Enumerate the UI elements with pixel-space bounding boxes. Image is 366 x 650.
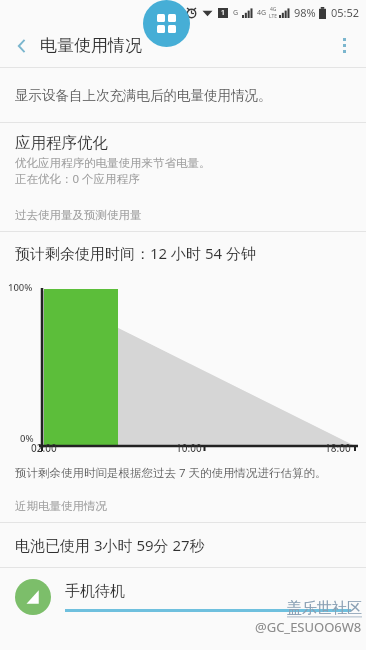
staticText: 电量使用情况 bbox=[40, 35, 142, 56]
staticText: 05:52 bbox=[331, 5, 360, 20]
staticText: 预计剩余使用时间是根据您过去 7 天的使用情况进行估算的。 bbox=[15, 465, 327, 481]
staticText: 1 bbox=[221, 8, 226, 18]
staticText: 应用程序优化 bbox=[15, 133, 108, 153]
staticText: 盖乐世社区 bbox=[287, 599, 362, 618]
button[interactable]: More options bbox=[322, 24, 366, 67]
staticText: 0% bbox=[20, 432, 34, 445]
staticText: LTE bbox=[269, 13, 278, 20]
staticText: 过去使用量及预测使用量 bbox=[15, 208, 142, 222]
staticText: 4G bbox=[270, 6, 277, 13]
button[interactable]: 应用程序优化 bbox=[0, 123, 366, 199]
staticText: 显示设备自上次充满电后的电量使用情况。 bbox=[15, 87, 272, 104]
staticText: 02:00 bbox=[31, 441, 57, 455]
staticText: G bbox=[233, 8, 239, 18]
staticText: 手机待机 bbox=[65, 582, 125, 601]
button[interactable]: Apps grid bbox=[143, 0, 190, 47]
staticText: 98% bbox=[294, 5, 316, 20]
staticText: 预计剩余使用时间：12 小时 54 分钟 bbox=[15, 243, 257, 263]
staticText: 4G bbox=[257, 8, 267, 18]
staticText: 正在优化：0 个应用程序 bbox=[15, 171, 140, 187]
staticText: 电池已使用 3小时 59分 27秒 bbox=[15, 535, 205, 555]
staticText: 优化应用程序的电量使用来节省电量。 bbox=[15, 156, 211, 170]
staticText: 近期电量使用情况 bbox=[15, 499, 107, 513]
staticText: 10:00 bbox=[176, 441, 202, 455]
button[interactable]: Back bbox=[0, 24, 44, 67]
staticText: @GC_ESUOO6W8 bbox=[255, 618, 362, 636]
staticText: 100% bbox=[8, 281, 33, 294]
button[interactable]: 手机待机 bbox=[0, 568, 366, 626]
staticText: 18:00 bbox=[325, 441, 351, 455]
